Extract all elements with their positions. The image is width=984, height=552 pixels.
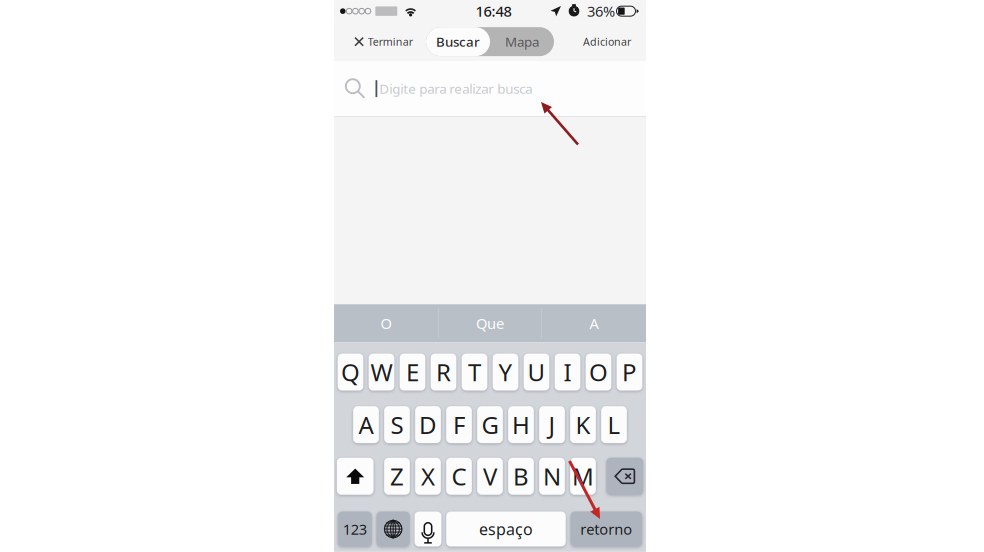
button[interactable]: S (384, 406, 410, 443)
button[interactable]: I (555, 354, 580, 391)
button[interactable]: U (524, 354, 549, 391)
staticText: C (451, 460, 466, 492)
staticText: H (512, 409, 530, 441)
staticText: O (380, 313, 391, 333)
button[interactable]: Shift (337, 458, 374, 495)
button[interactable]: Que (439, 304, 541, 342)
staticText: Y (498, 356, 512, 388)
button[interactable]: E (400, 354, 425, 391)
staticText: Terminar (368, 35, 413, 49)
button[interactable]: K (570, 406, 596, 443)
button[interactable]: Delete (606, 458, 643, 495)
button[interactable]: A (542, 304, 646, 342)
staticText: O (589, 356, 608, 388)
staticText: L (607, 409, 620, 441)
staticText: I (563, 356, 571, 388)
staticText: P (622, 356, 637, 388)
staticText: Mapa (505, 33, 539, 50)
button[interactable]: Dictation (415, 512, 441, 547)
button[interactable]: T (462, 354, 487, 391)
button[interactable]: V (477, 458, 503, 495)
staticText: Que (476, 313, 504, 333)
staticText: X (421, 460, 435, 492)
staticText: retorno (580, 519, 632, 539)
staticText: W (370, 356, 392, 388)
button[interactable]: B (508, 458, 534, 495)
staticText: R (436, 356, 451, 388)
button[interactable]: A (353, 406, 379, 443)
button[interactable]: L (601, 406, 627, 443)
staticText: D (419, 409, 437, 441)
button[interactable]: 123 (338, 512, 372, 547)
staticText: A (358, 409, 373, 441)
staticText: E (406, 356, 419, 388)
staticText: S (390, 409, 403, 441)
button[interactable]: J (539, 406, 565, 443)
button[interactable]: F (446, 406, 472, 443)
staticText: Digite para realizar busca (379, 80, 532, 97)
staticText: Buscar (436, 33, 480, 50)
button[interactable]: Adicionar (583, 22, 631, 61)
button[interactable]: H (508, 406, 534, 443)
button[interactable]: Buscar (426, 27, 490, 56)
staticText: U (527, 356, 545, 388)
button[interactable]: G (477, 406, 503, 443)
button[interactable]: W (369, 354, 394, 391)
staticText: A (589, 313, 598, 333)
staticText: K (575, 409, 590, 441)
button[interactable]: D (415, 406, 441, 443)
button[interactable]: Y (493, 354, 518, 391)
button[interactable]: O (586, 354, 611, 391)
button[interactable]: Z (384, 458, 410, 495)
staticText: N (543, 460, 561, 492)
button[interactable]: N (539, 458, 565, 495)
staticText: Z (390, 460, 404, 492)
button[interactable]: R (431, 354, 456, 391)
staticText: F (453, 409, 465, 441)
staticText: G (481, 409, 498, 441)
button[interactable]: retorno (570, 512, 642, 547)
button[interactable]: Mapa (490, 27, 554, 56)
button[interactable]: Terminar (355, 22, 413, 61)
staticText: Q (341, 356, 360, 388)
button[interactable]: C (446, 458, 472, 495)
staticText: B (513, 460, 529, 492)
button[interactable]: O (334, 304, 438, 342)
button[interactable]: espaço (446, 512, 566, 547)
staticText: T (468, 356, 481, 388)
staticText: M (572, 460, 594, 492)
staticText: J (548, 409, 555, 441)
button[interactable]: P (617, 354, 642, 391)
staticText: Adicionar (583, 35, 631, 49)
button[interactable]: Q (338, 354, 363, 391)
staticText: 16:48 (475, 1, 511, 21)
staticText: 123 (343, 519, 367, 539)
button[interactable]: X (415, 458, 441, 495)
staticText: espaço (479, 518, 533, 540)
button[interactable]: Next keyboard (377, 512, 410, 547)
staticText: V (483, 460, 497, 492)
button[interactable]: M (570, 458, 596, 495)
staticText: 36% (587, 1, 615, 21)
